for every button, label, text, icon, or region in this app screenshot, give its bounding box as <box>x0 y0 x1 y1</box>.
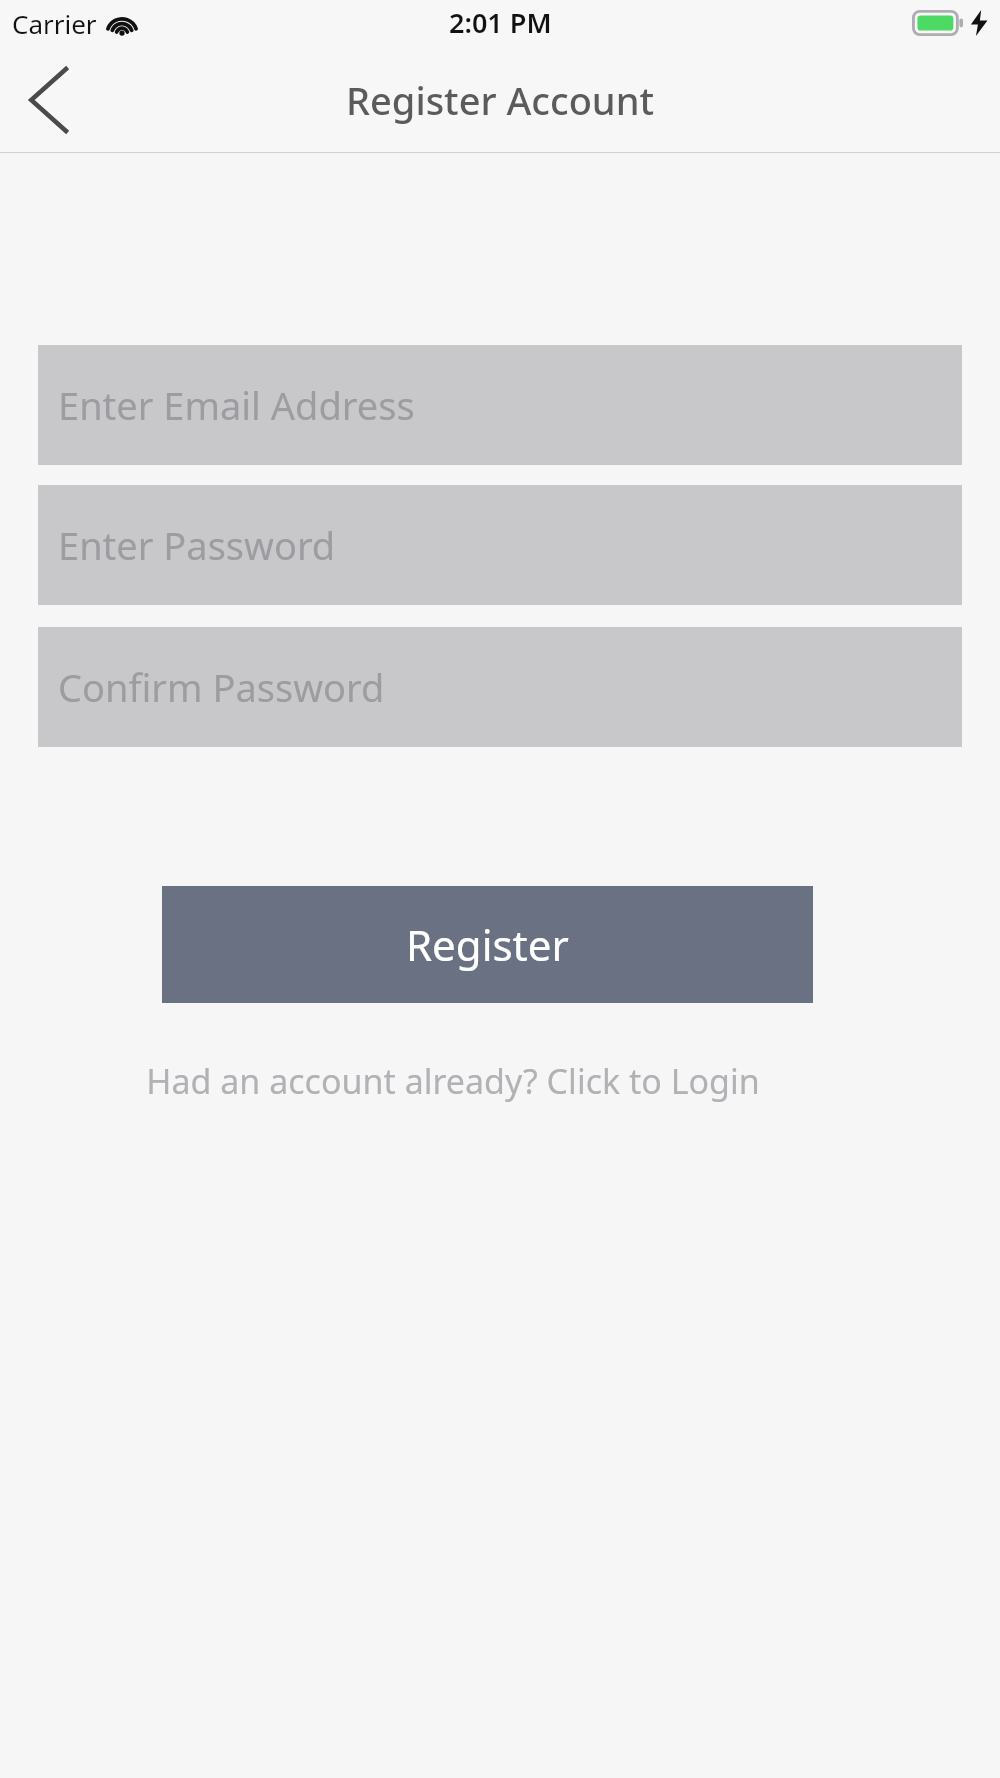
button[interactable]: Had an account already? Click to Login <box>100 1053 805 1109</box>
button[interactable]: Register <box>162 886 813 1003</box>
staticText: Register <box>406 916 569 973</box>
staticText: 2:01 PM <box>449 4 552 41</box>
staticText: Carrier <box>12 6 97 41</box>
button[interactable]: Confirm Password <box>38 627 962 747</box>
staticText: Enter Password <box>58 519 336 571</box>
staticText: Confirm Password <box>58 661 385 713</box>
staticText: Enter Email Address <box>58 379 415 431</box>
button[interactable]: Enter Password <box>38 485 962 605</box>
staticText: Register Account <box>346 74 655 126</box>
button[interactable]: Back <box>0 52 96 148</box>
button[interactable]: Enter Email Address <box>38 345 962 465</box>
staticText: Had an account already? Click to Login <box>146 1058 760 1104</box>
